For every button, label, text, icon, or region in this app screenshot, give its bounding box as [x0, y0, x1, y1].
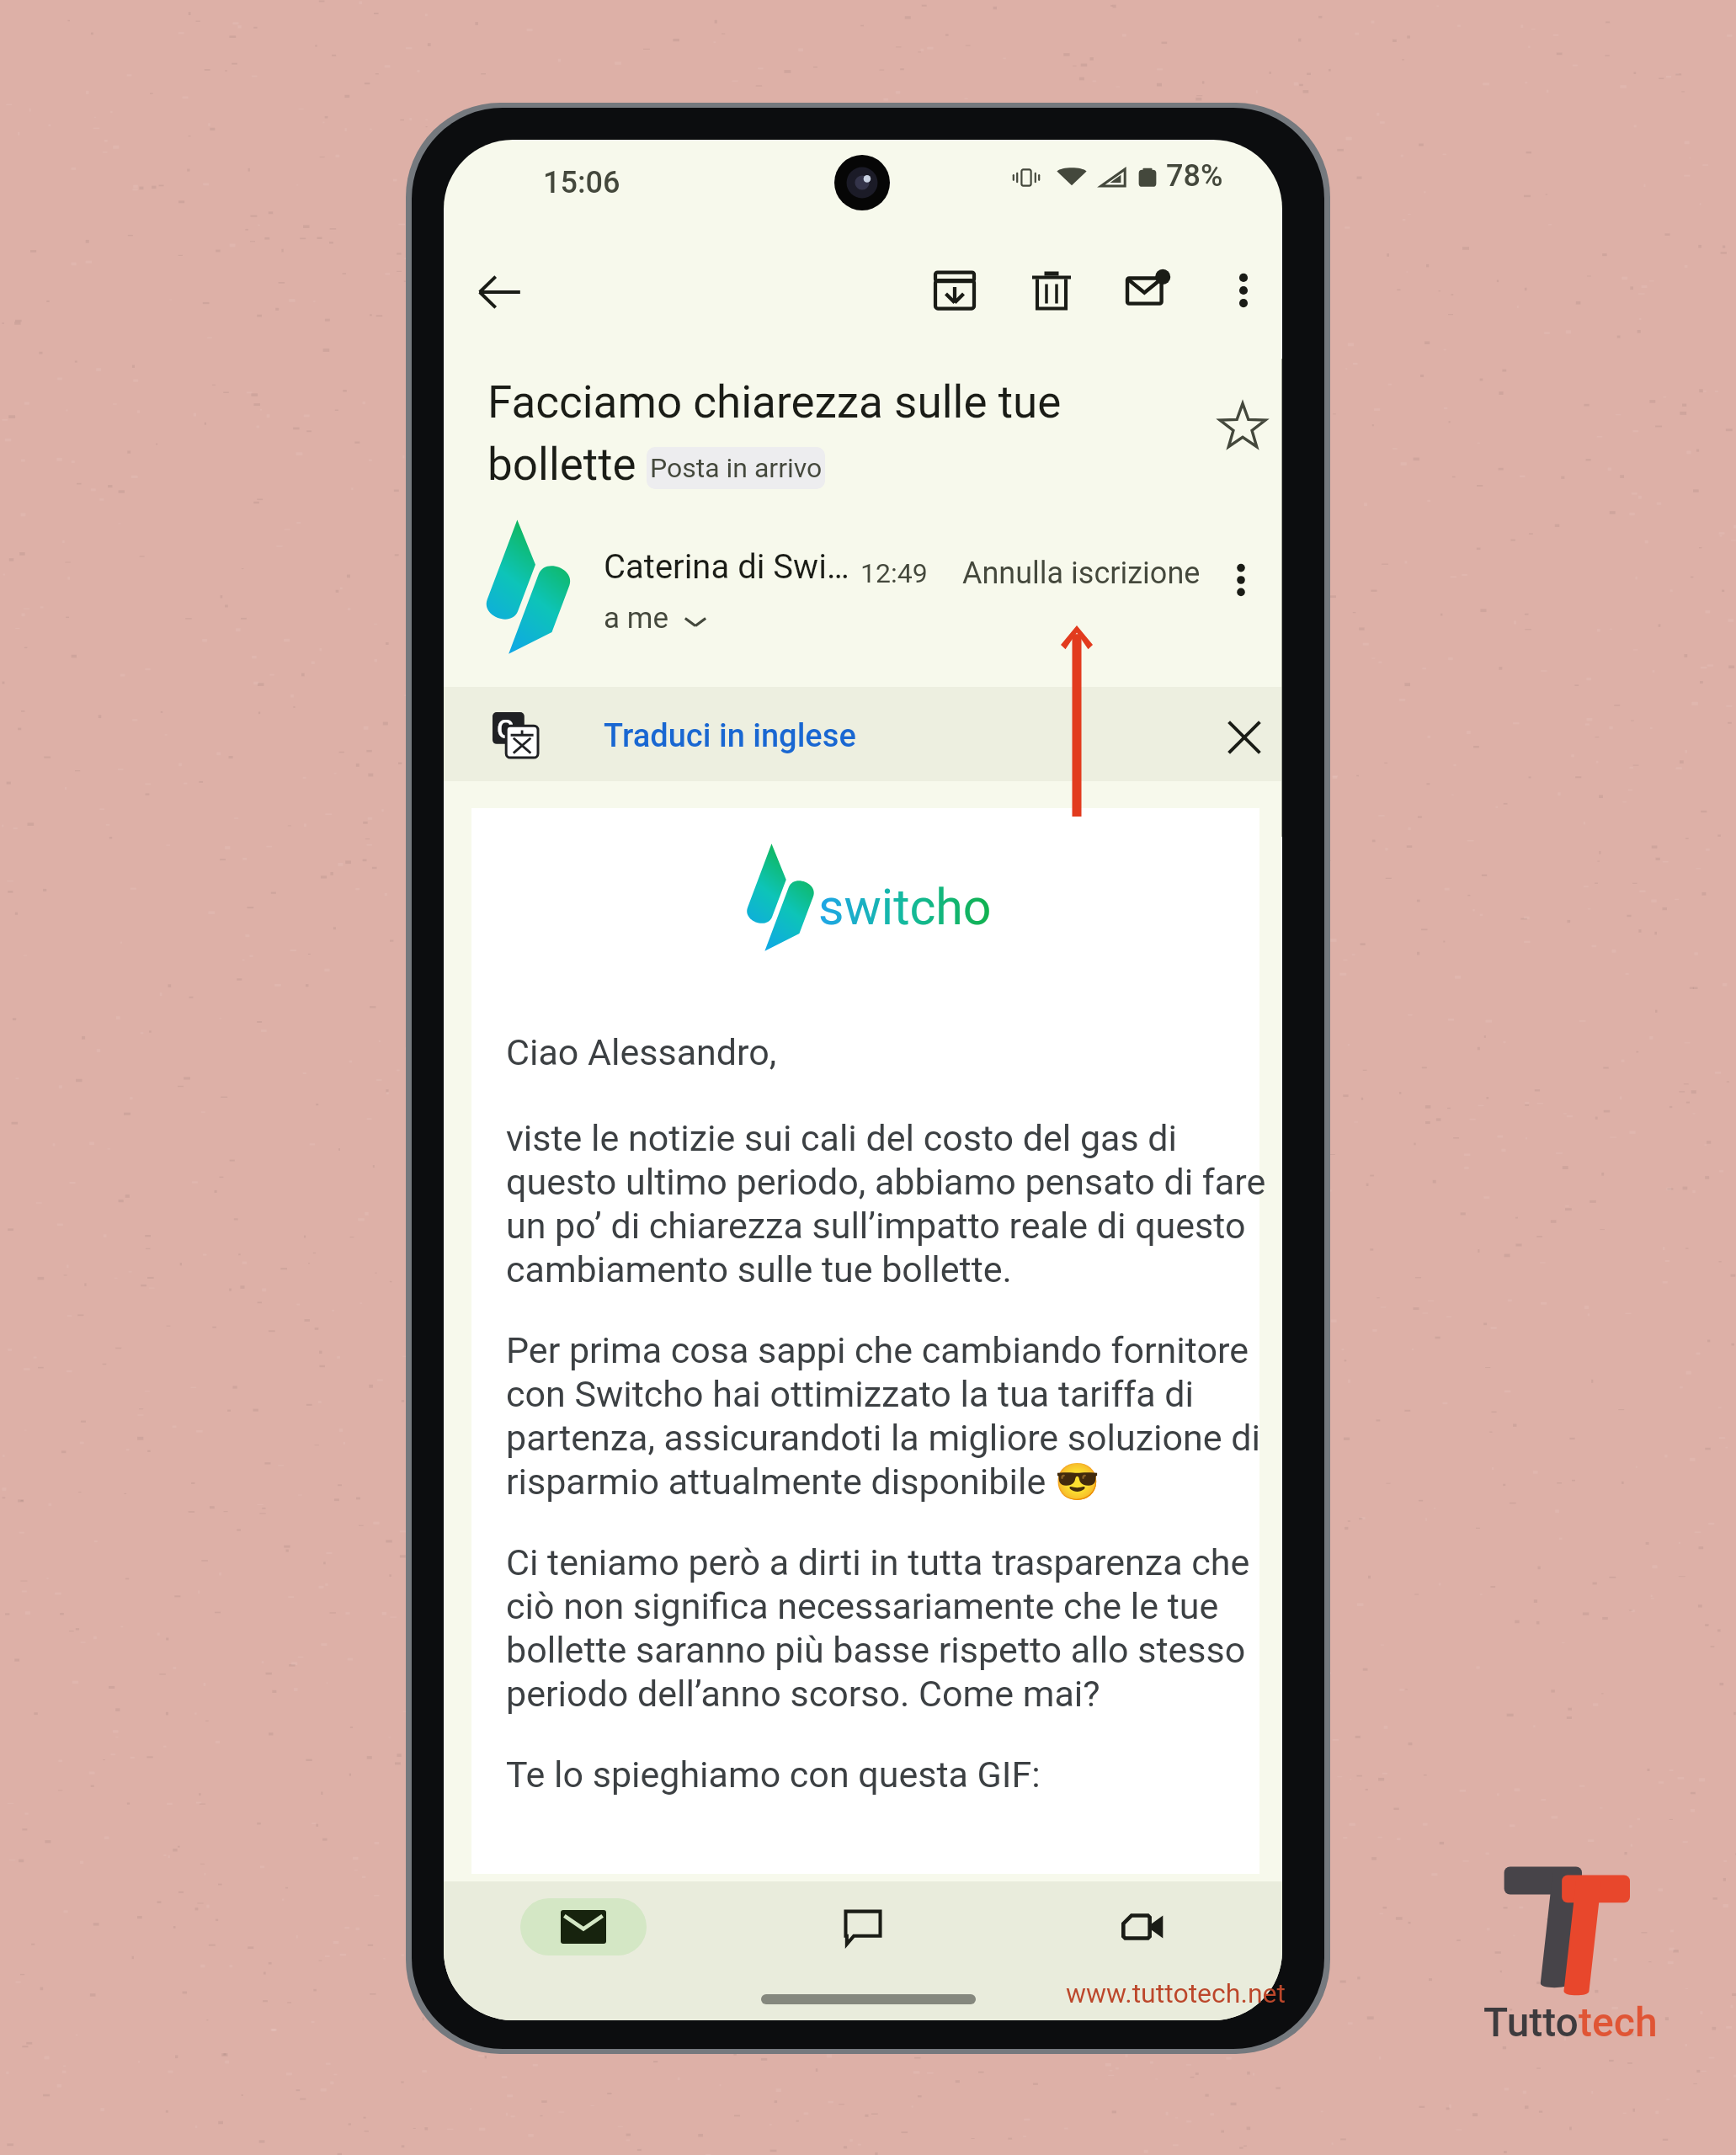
staticText: Traduci in inglese: [604, 717, 856, 755]
button[interactable]: Traduci in inglese: [600, 714, 860, 758]
button[interactable]: Back: [461, 254, 537, 330]
staticText: risparmio attualmente disponibile 😎: [506, 1461, 1100, 1503]
button[interactable]: Message options: [1210, 549, 1272, 611]
staticText: Posta in arrivo: [650, 452, 823, 484]
staticText: G: [497, 714, 515, 744]
staticText: a me: [604, 601, 668, 636]
staticText: Per prima cosa sappi che cambiando forni…: [506, 1329, 1249, 1371]
staticText: periodo dell’anno scorso. Come mai?: [506, 1673, 1100, 1715]
button[interactable]: Chat: [800, 1898, 926, 1955]
staticText: 15:06: [543, 165, 620, 200]
staticText: un po’ di chiarezza sull’impatto reale d…: [506, 1205, 1246, 1247]
button[interactable]: a me: [600, 598, 712, 639]
button[interactable]: Mail: [520, 1898, 647, 1955]
staticText: 78%: [1166, 158, 1223, 194]
button[interactable]: Close: [1214, 707, 1275, 768]
staticText: Ciao Alessandro,: [506, 1031, 777, 1073]
staticText: Tutto: [1483, 1998, 1579, 2046]
staticText: ciò non significa necessariamente che le…: [506, 1585, 1219, 1627]
staticText: Annulla iscrizione: [962, 556, 1201, 591]
staticText: tech: [1579, 1998, 1658, 2046]
button[interactable]: Star: [1206, 390, 1279, 462]
staticText: questo ultimo periodo, abbiamo pensato d…: [506, 1161, 1266, 1203]
staticText: Te lo spieghiamo con questa GIF:: [506, 1753, 1041, 1796]
staticText: Ci teniamo però a dirti in tutta traspar…: [506, 1541, 1250, 1583]
staticText: Caterina di Swi…: [604, 547, 849, 587]
button[interactable]: Mark as unread: [1112, 254, 1185, 327]
button[interactable]: Delete: [1015, 254, 1088, 327]
button[interactable]: Archive: [919, 254, 991, 327]
staticText: cambiamento sulle tue bollette.: [506, 1248, 1012, 1290]
staticText: www.tuttotech.net: [1066, 1977, 1286, 2009]
button[interactable]: Annulla iscrizione: [956, 549, 1207, 598]
staticText: bollette saranno più basse rispetto allo…: [506, 1629, 1246, 1671]
button[interactable]: Posta in arrivo: [647, 447, 825, 489]
staticText: 12:49: [860, 557, 928, 589]
staticText: bollette: [487, 439, 636, 491]
staticText: Facciamo chiarezza sulle tue: [487, 376, 1062, 428]
staticText: partenza, assicurandoti la migliore solu…: [506, 1417, 1260, 1459]
button[interactable]: Meet: [1079, 1898, 1206, 1955]
button[interactable]: More options: [1207, 254, 1280, 327]
staticText: switcho: [818, 878, 992, 936]
staticText: viste le notizie sui cali del costo del …: [506, 1117, 1177, 1159]
staticText: con Switcho hai ottimizzato la tua tarif…: [506, 1373, 1195, 1415]
